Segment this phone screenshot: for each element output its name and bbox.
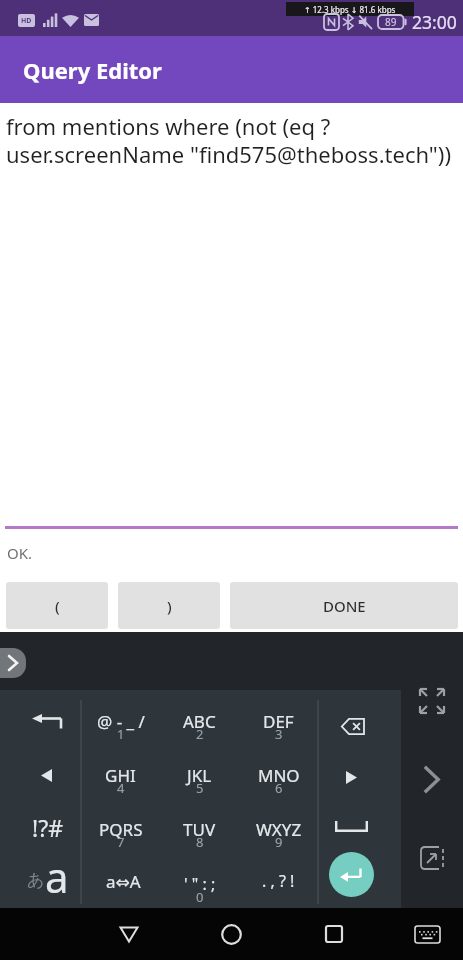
staticText: OK. (7, 543, 33, 563)
button[interactable] (312, 918, 356, 950)
staticText: TUV (183, 818, 216, 841)
staticText: 89 (385, 15, 397, 29)
button[interactable] (405, 918, 449, 950)
button[interactable] (318, 798, 401, 853)
staticText: GHI (105, 764, 136, 787)
staticText: 0 (196, 888, 204, 906)
staticText: . , ? ! (262, 870, 295, 892)
button[interactable] (0, 744, 81, 798)
staticText: 2 (196, 725, 204, 743)
staticText: PQRS (99, 818, 143, 841)
staticText: ' " : ; (184, 873, 216, 895)
button[interactable]: MNO (239, 744, 318, 798)
staticText: ( (55, 596, 60, 616)
staticText: a⇔A (106, 870, 141, 893)
button[interactable] (0, 648, 26, 678)
button[interactable]: !?# (0, 798, 81, 853)
button[interactable]: TUV (160, 798, 239, 853)
staticText: 5 (196, 779, 204, 797)
button[interactable] (318, 744, 401, 798)
button[interactable] (0, 690, 81, 744)
staticText: WXYZ (256, 818, 302, 841)
staticText: 1 (117, 725, 125, 743)
button[interactable] (410, 836, 454, 880)
staticText: HD (21, 16, 32, 26)
button[interactable]: GHI (81, 744, 160, 798)
button[interactable] (107, 918, 151, 950)
staticText: 7 (117, 833, 125, 851)
staticText: Query Editor (23, 55, 162, 85)
button[interactable] (318, 853, 401, 908)
button[interactable]: JKL (160, 744, 239, 798)
staticText: DEF (263, 710, 294, 733)
staticText: from mentions where (not (eq ? user.scre… (6, 111, 452, 169)
button[interactable] (318, 690, 401, 744)
staticText: DONE (323, 596, 366, 616)
staticText: ↑ 12.3 kbps ↓ 81.6 kbps (304, 4, 396, 15)
button[interactable]: . , ? ! (239, 853, 318, 908)
button[interactable]: DEF (239, 690, 318, 744)
button[interactable] (329, 852, 374, 897)
staticText: 23:00 (412, 10, 457, 34)
button[interactable]: @ - _ / (81, 690, 160, 744)
staticText: !?# (32, 812, 64, 843)
button[interactable]: あ (0, 853, 81, 908)
button[interactable]: DONE (230, 582, 458, 629)
staticText: ) (167, 596, 172, 616)
button[interactable] (409, 757, 453, 801)
button[interactable]: ' " : ; (160, 853, 239, 908)
staticText: 3 (275, 725, 283, 743)
staticText: あ (27, 870, 45, 891)
button[interactable]: ( (6, 582, 108, 629)
staticText: @ - _ / (97, 710, 145, 733)
staticText: ABC (183, 710, 216, 733)
staticText: 4 (117, 779, 125, 797)
staticText: 9 (275, 833, 283, 851)
button[interactable]: a⇔A (81, 853, 160, 908)
staticText: a (45, 848, 69, 903)
staticText: JKL (187, 764, 212, 787)
staticText: MNO (258, 764, 300, 787)
button[interactable]: PQRS (81, 798, 160, 853)
button[interactable] (410, 679, 454, 723)
staticText: 8 (196, 833, 204, 851)
button[interactable]: ABC (160, 690, 239, 744)
staticText: 6 (275, 779, 283, 797)
button[interactable]: ) (118, 582, 220, 629)
button[interactable] (209, 918, 253, 950)
button[interactable]: WXYZ (239, 798, 318, 853)
